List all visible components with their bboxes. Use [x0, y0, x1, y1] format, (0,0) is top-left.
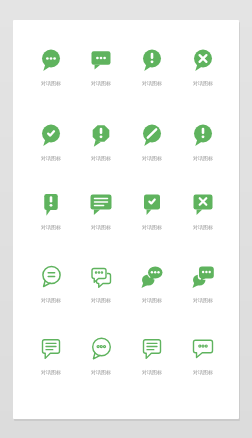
staticText: 对话图标 [41, 224, 61, 230]
staticText: 对话图标 [193, 297, 213, 303]
staticText: 对话图标 [91, 297, 111, 303]
staticText: 对话图标 [193, 224, 213, 230]
staticText: 对话图标 [193, 369, 213, 375]
staticText: 对话图标 [91, 80, 111, 86]
staticText: 对话图标 [41, 155, 61, 161]
staticText: 对话图标 [91, 224, 111, 230]
staticText: 对话图标 [142, 369, 162, 375]
button[interactable]: 对话图标 [126, 188, 178, 236]
staticText: 对话图标 [41, 80, 61, 86]
staticText: 对话图标 [91, 155, 111, 161]
staticText: 对话图标 [41, 297, 61, 303]
staticText: 对话图标 [41, 369, 61, 375]
button[interactable]: 对话图标 [25, 44, 77, 92]
button[interactable]: 对话图标 [75, 44, 127, 92]
staticText: 对话图标 [91, 369, 111, 375]
staticText: 对话图标 [142, 80, 162, 86]
button[interactable]: 对话图标 [177, 119, 229, 167]
button[interactable]: 对话图标 [126, 44, 178, 92]
button[interactable]: 对话图标 [75, 119, 127, 167]
button[interactable]: 对话图标 [25, 333, 77, 381]
button[interactable]: 对话图标 [75, 188, 127, 236]
staticText: 对话图标 [142, 297, 162, 303]
button[interactable]: 对话图标 [126, 333, 178, 381]
button[interactable]: 对话图标 [75, 261, 127, 309]
button[interactable]: 对话图标 [25, 261, 77, 309]
button[interactable]: 对话图标 [75, 333, 127, 381]
staticText: 对话图标 [142, 224, 162, 230]
staticText: 对话图标 [193, 155, 213, 161]
button[interactable]: 对话图标 [177, 261, 229, 309]
button[interactable]: 对话图标 [25, 188, 77, 236]
button[interactable]: 对话图标 [177, 333, 229, 381]
staticText: 对话图标 [193, 80, 213, 86]
button[interactable]: 对话图标 [25, 119, 77, 167]
button[interactable]: 对话图标 [177, 44, 229, 92]
button[interactable]: 对话图标 [177, 188, 229, 236]
staticText: 对话图标 [142, 155, 162, 161]
button[interactable]: 对话图标 [126, 119, 178, 167]
button[interactable]: 对话图标 [126, 261, 178, 309]
